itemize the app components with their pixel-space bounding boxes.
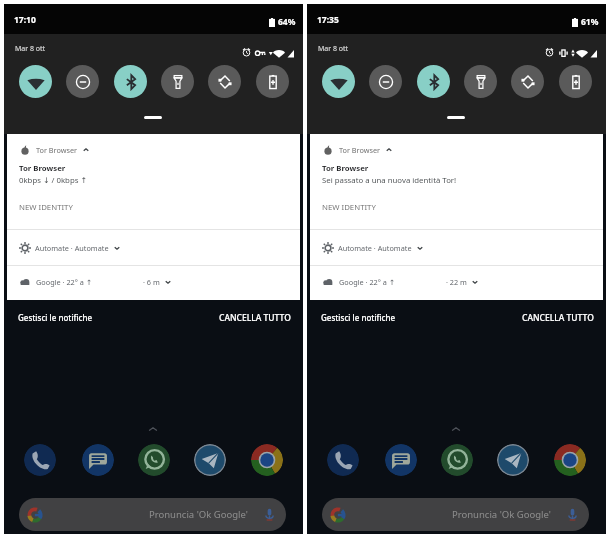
staticText: Gestisci le notifiche bbox=[18, 312, 93, 323]
button[interactable]: Tor Browser bbox=[323, 145, 392, 155]
button[interactable]: Telegram bbox=[194, 444, 226, 476]
button[interactable]: Chrome bbox=[554, 444, 586, 476]
staticText: 64% bbox=[278, 16, 296, 28]
button[interactable]: Quick setting bbox=[19, 65, 52, 98]
button[interactable]: NEW IDENTITY bbox=[15, 199, 77, 216]
button[interactable]: Google · 22° a ↑ bbox=[7, 266, 300, 297]
button[interactable]: Quick setting bbox=[369, 65, 402, 98]
button[interactable]: Quick setting bbox=[464, 65, 497, 98]
staticText: 17:35 bbox=[317, 14, 339, 26]
button[interactable]: Quick setting bbox=[511, 65, 544, 98]
staticText: 0kbps ↓ / 0kbps ↑ bbox=[19, 175, 87, 186]
button[interactable]: Gestisci le notifiche bbox=[13, 307, 98, 328]
staticText: 61% bbox=[581, 16, 599, 28]
staticText: Gestisci le notifiche bbox=[321, 312, 396, 323]
button[interactable]: Quick setting bbox=[161, 65, 194, 98]
button[interactable]: Pronuncia 'Ok Google' bbox=[322, 498, 589, 531]
button[interactable]: CANCELLA TUTTO bbox=[214, 307, 296, 329]
button[interactable]: Quick setting bbox=[256, 65, 289, 98]
staticText: Automate · Automate bbox=[35, 243, 109, 253]
button[interactable]: CANCELLA TUTTO bbox=[517, 307, 599, 329]
staticText: Tor Browser bbox=[19, 163, 66, 174]
staticText: Pronuncia 'Ok Google' bbox=[149, 508, 248, 521]
staticText: CANCELLA TUTTO bbox=[219, 312, 291, 324]
button[interactable]: Gestisci le notifiche bbox=[316, 307, 401, 328]
staticText: Tor Browser bbox=[322, 163, 369, 174]
button[interactable]: Automate · Automate bbox=[7, 230, 300, 265]
staticText: Google · 22° a ↑ bbox=[36, 277, 92, 287]
button[interactable]: WhatsApp bbox=[441, 444, 473, 476]
button[interactable]: Automate · Automate bbox=[310, 230, 603, 265]
button[interactable]: Phone bbox=[24, 444, 56, 476]
button[interactable]: Quick setting bbox=[66, 65, 99, 98]
button[interactable]: Telegram bbox=[497, 444, 529, 476]
button[interactable]: Quick setting bbox=[114, 65, 147, 98]
staticText: Automate · Automate bbox=[338, 243, 412, 253]
staticText: · 6 m bbox=[143, 277, 160, 287]
staticText: NEW IDENTITY bbox=[19, 202, 73, 213]
button[interactable]: Tor Browser bbox=[20, 145, 89, 155]
staticText: Mar 8 ott bbox=[15, 44, 46, 54]
button[interactable]: NEW IDENTITY bbox=[318, 199, 380, 216]
button[interactable]: Quick setting bbox=[322, 65, 355, 98]
staticText: Sei passato a una nuova identità Tor! bbox=[322, 175, 457, 186]
staticText: Mar 8 ott bbox=[318, 44, 349, 54]
staticText: Tor Browser bbox=[339, 145, 381, 155]
staticText: · 22 m bbox=[446, 277, 467, 287]
button[interactable]: Quick setting bbox=[417, 65, 450, 98]
staticText: CANCELLA TUTTO bbox=[522, 312, 594, 324]
button[interactable]: Google · 22° a ↑ bbox=[310, 266, 603, 297]
staticText: Tor Browser bbox=[36, 145, 78, 155]
button[interactable]: Messages bbox=[82, 444, 114, 476]
button[interactable]: Messages bbox=[385, 444, 417, 476]
button[interactable]: WhatsApp bbox=[138, 444, 170, 476]
button[interactable]: Phone bbox=[327, 444, 359, 476]
button[interactable]: Pronuncia 'Ok Google' bbox=[19, 498, 286, 531]
staticText: 17:10 bbox=[14, 14, 36, 26]
staticText: NEW IDENTITY bbox=[322, 202, 376, 213]
button[interactable]: Chrome bbox=[251, 444, 283, 476]
button[interactable]: Quick setting bbox=[208, 65, 241, 98]
button[interactable]: Quick setting bbox=[559, 65, 592, 98]
staticText: Pronuncia 'Ok Google' bbox=[452, 508, 551, 521]
staticText: Google · 22° a ↑ bbox=[339, 277, 395, 287]
